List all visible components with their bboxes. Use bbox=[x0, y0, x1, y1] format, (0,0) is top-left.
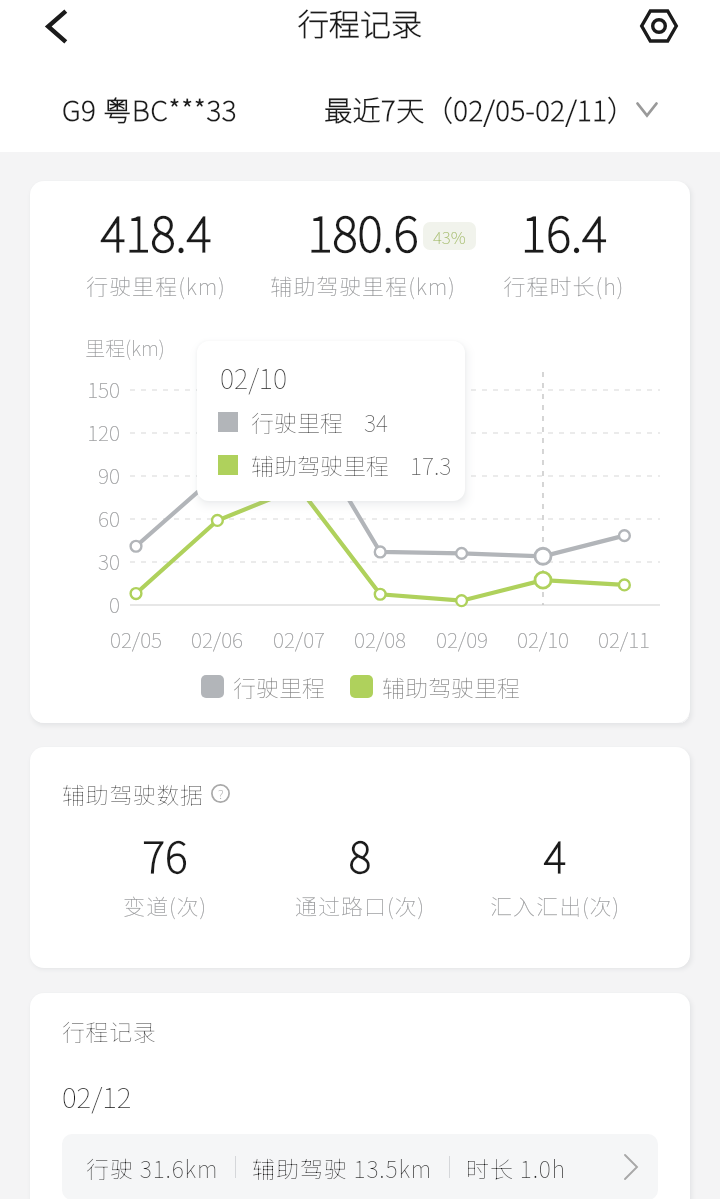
staticText: 02/08 bbox=[330, 624, 430, 654]
staticText: 行驶里程 bbox=[251, 405, 343, 438]
staticText: 34 bbox=[364, 405, 388, 438]
staticText: 418.4 bbox=[30, 196, 336, 266]
staticText: 150 bbox=[60, 374, 120, 404]
staticText: 180.6 bbox=[183, 196, 543, 266]
staticText: 16.4 bbox=[384, 196, 690, 266]
staticText: 120 bbox=[60, 417, 120, 447]
staticText: 76 bbox=[30, 823, 345, 885]
staticText: 最近7天（02/05-02/11） bbox=[324, 89, 636, 130]
staticText: 通过路口(次) bbox=[180, 889, 540, 921]
button[interactable]: 最近7天（02/05-02/11） bbox=[324, 89, 658, 130]
staticText: 02/10 bbox=[493, 624, 593, 654]
staticText: 辅助驾驶里程(km) bbox=[183, 269, 543, 301]
staticText: 行程时长(h) bbox=[384, 269, 690, 301]
staticText: 02/11 bbox=[574, 624, 674, 654]
button[interactable]: Settings bbox=[633, 0, 685, 51]
staticText: 02/07 bbox=[249, 624, 349, 654]
staticText: 60 bbox=[60, 503, 120, 533]
staticText: 行驶里程 bbox=[233, 670, 325, 703]
staticText: ? bbox=[218, 784, 224, 803]
staticText: 02/10 bbox=[220, 358, 287, 397]
button[interactable]: 辅助驾驶数据 bbox=[62, 777, 230, 810]
staticText: 汇入汇出(次) bbox=[375, 889, 690, 921]
staticText: 90 bbox=[60, 460, 120, 490]
staticText: 变道(次) bbox=[30, 889, 345, 921]
staticText: 17.3 bbox=[410, 448, 452, 481]
other: Info bbox=[211, 784, 230, 803]
button[interactable]: G9 粤BC***33 bbox=[62, 89, 238, 130]
staticText: 02/12 bbox=[62, 1076, 132, 1117]
staticText: 辅助驾驶里程 bbox=[251, 448, 389, 481]
staticText: 辅助驾驶数据 bbox=[62, 777, 204, 810]
staticText: 30 bbox=[60, 546, 120, 576]
staticText: 0 bbox=[60, 589, 120, 619]
staticText: 02/06 bbox=[167, 624, 267, 654]
staticText: 8 bbox=[180, 823, 540, 885]
staticText: 02/09 bbox=[412, 624, 512, 654]
staticText: 辅助驾驶 13.5km bbox=[252, 1151, 433, 1184]
staticText: 行程记录 bbox=[62, 1014, 157, 1047]
staticText: 里程(km) bbox=[85, 333, 165, 362]
staticText: 43% bbox=[433, 224, 466, 249]
staticText: G9 粤BC***33 bbox=[62, 89, 238, 130]
staticText: 辅助驾驶里程 bbox=[382, 670, 520, 703]
staticText: 行驶 31.6km bbox=[86, 1151, 219, 1184]
staticText: 行程记录 bbox=[298, 0, 422, 45]
staticText: 行驶里程(km) bbox=[30, 269, 336, 301]
staticText: 时长 1.0h bbox=[466, 1151, 566, 1184]
staticText: 02/05 bbox=[86, 624, 186, 654]
button[interactable]: 行驶 31.6km bbox=[62, 1134, 658, 1199]
staticText: 4 bbox=[375, 823, 690, 885]
button[interactable]: Back bbox=[29, 0, 85, 52]
